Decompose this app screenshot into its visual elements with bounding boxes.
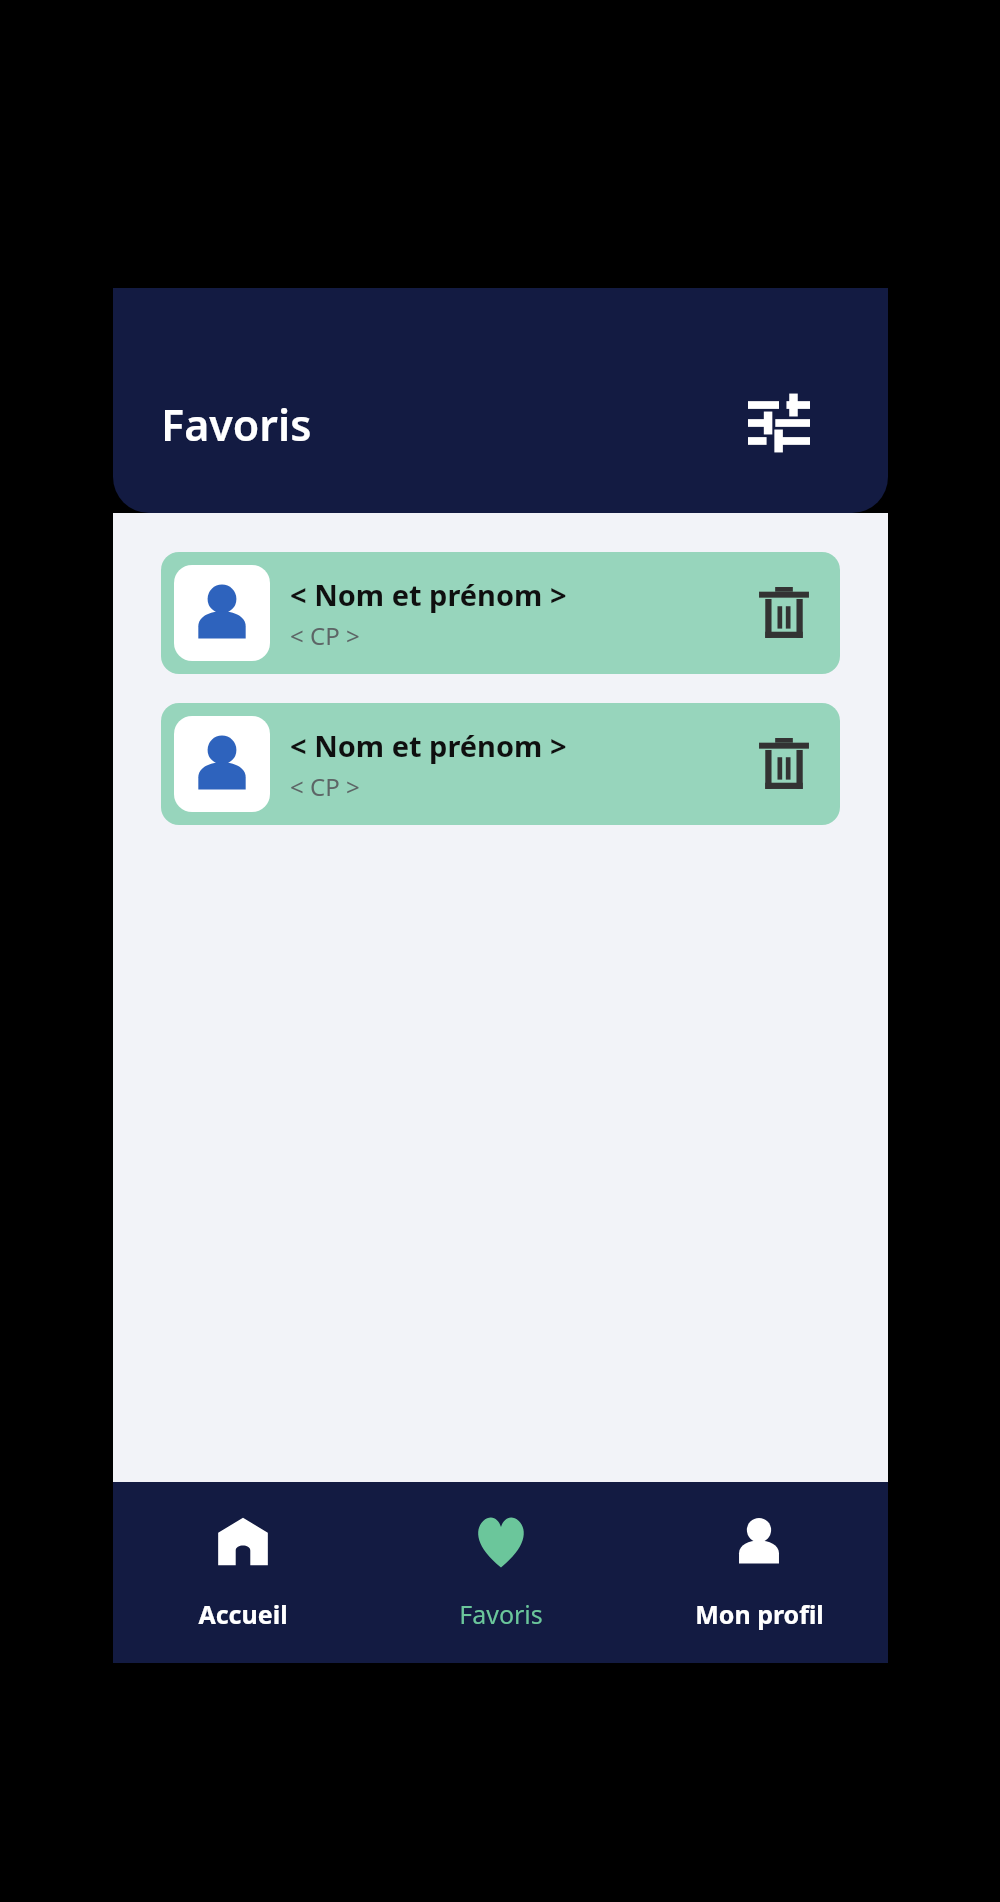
staticText: Favoris: [161, 395, 312, 454]
button[interactable]: Favoris: [372, 1482, 630, 1663]
staticText: Mon profil: [695, 1597, 824, 1631]
staticText: Favoris: [459, 1597, 543, 1631]
button[interactable]: Mon profil: [630, 1482, 888, 1663]
staticText: Accueil: [198, 1597, 288, 1631]
button[interactable]: Supprimer: [738, 567, 830, 659]
button[interactable]: Supprimer: [738, 718, 830, 810]
button[interactable]: Filtres: [731, 375, 827, 471]
button[interactable]: < Nom et prénom >: [161, 703, 840, 825]
staticText: < Nom et prénom >: [290, 726, 567, 765]
button[interactable]: Accueil: [113, 1482, 372, 1663]
staticText: < Nom et prénom >: [290, 575, 567, 614]
button[interactable]: < Nom et prénom >: [161, 552, 840, 674]
staticText: < CP >: [290, 619, 360, 652]
staticText: < CP >: [290, 770, 360, 803]
